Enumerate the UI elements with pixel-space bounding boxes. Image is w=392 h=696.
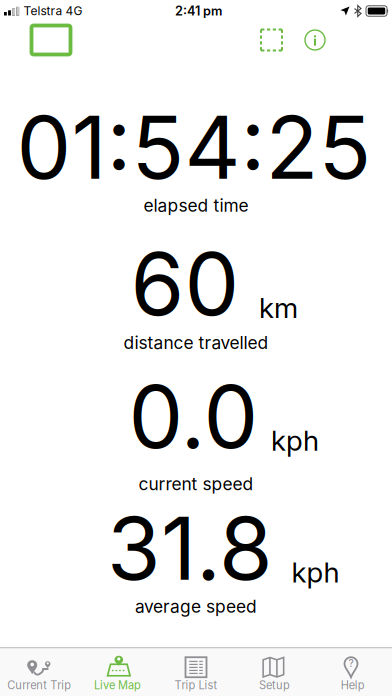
button[interactable]: Fit to track bbox=[261, 29, 282, 50]
button[interactable]: Help bbox=[314, 648, 392, 696]
button[interactable]: Info bbox=[282, 30, 325, 50]
button[interactable]: Current Trip bbox=[0, 648, 78, 696]
button[interactable]: Trip List bbox=[157, 648, 235, 696]
button[interactable]: Stop recording bbox=[31, 25, 70, 54]
staticText: km bbox=[259, 291, 298, 324]
staticText: 31.8 bbox=[107, 497, 273, 599]
staticText: Trip List bbox=[174, 679, 217, 692]
staticText: Live Map bbox=[94, 679, 141, 692]
staticText: 2:41 pm bbox=[175, 3, 222, 18]
staticText: Help bbox=[341, 679, 365, 692]
staticText: 60 bbox=[130, 233, 239, 335]
staticText: Telstra bbox=[23, 4, 62, 18]
staticText: distance travelled bbox=[123, 332, 268, 353]
staticText: kph bbox=[291, 556, 339, 589]
staticText: 01:54:25 bbox=[16, 96, 371, 198]
staticText: 4G bbox=[65, 4, 82, 18]
staticText: 0.0 bbox=[128, 365, 258, 468]
staticText: Current Trip bbox=[7, 679, 71, 692]
staticText: elapsed time bbox=[143, 195, 248, 216]
staticText: ? bbox=[348, 657, 353, 669]
staticText: kph bbox=[271, 424, 319, 457]
button[interactable]: Setup bbox=[235, 648, 314, 696]
staticText: Setup bbox=[259, 679, 290, 692]
staticText: average speed bbox=[135, 596, 257, 617]
staticText: current speed bbox=[138, 474, 253, 494]
button[interactable]: Live Map bbox=[78, 648, 157, 696]
